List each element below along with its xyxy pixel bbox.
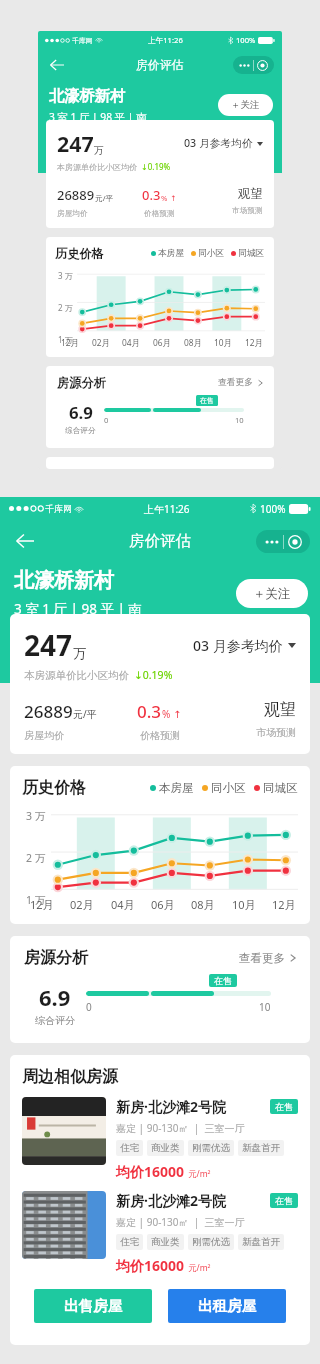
staticText: 26889 xyxy=(24,700,73,723)
staticText: 3 万 xyxy=(26,809,46,823)
staticText: % xyxy=(161,193,168,203)
button[interactable]: 出租房屋 xyxy=(168,1289,286,1323)
staticText: 元/平 xyxy=(95,193,114,203)
staticText: 02月 xyxy=(70,897,94,912)
staticText: 08月 xyxy=(191,897,215,912)
staticText: 观望 xyxy=(264,700,296,720)
staticText: 新盘首开 xyxy=(242,1236,280,1248)
staticText: 同小区 xyxy=(198,248,225,259)
staticText: 均价16000 xyxy=(116,1256,185,1275)
staticText: 元/平 xyxy=(73,707,97,721)
staticText: 北濠桥新村 xyxy=(49,86,126,105)
staticText: 03 月参考均价 xyxy=(184,136,253,151)
staticText: 综合评分 xyxy=(65,426,96,436)
staticText: 房屋均价 xyxy=(24,729,64,742)
button[interactable]: Back xyxy=(9,525,41,557)
staticText: 100% xyxy=(236,35,256,45)
staticText: 住宅 xyxy=(120,1236,139,1248)
staticText: ↓0.19% xyxy=(134,668,173,682)
staticText: 在售 xyxy=(275,1101,293,1112)
staticText: 3 室 1 厅 | 98 平 | 南 xyxy=(14,600,142,618)
staticText: 03 月参考均价 xyxy=(193,636,283,655)
staticText: 1 万 xyxy=(58,334,73,345)
staticText: 元/m² xyxy=(188,1168,211,1180)
staticText: 12月 xyxy=(272,897,296,912)
staticText: 10 xyxy=(259,1000,271,1014)
staticText: 3 室 1 厅 | 98 平 | 南 xyxy=(49,110,147,124)
staticText: 本房屋 xyxy=(159,781,194,795)
staticText: 查看更多 xyxy=(239,951,285,965)
staticText: 千库网 xyxy=(72,36,93,45)
staticText: 刚需优选 xyxy=(192,1236,230,1248)
staticText: ＋关注 xyxy=(253,586,291,602)
staticText: 房价评估 xyxy=(129,531,191,551)
staticText: 10月 xyxy=(232,897,256,912)
staticText: 房源分析 xyxy=(24,948,88,968)
button[interactable]: ＋关注 xyxy=(236,579,308,608)
button[interactable]: 查看更多 xyxy=(218,377,263,388)
staticText: 12月 xyxy=(61,337,79,348)
staticText: 查看更多 xyxy=(218,377,254,388)
staticText: 0.3 xyxy=(142,186,161,204)
staticText: 0.3 xyxy=(137,700,162,723)
button[interactable]: 03 月参考均价 xyxy=(193,636,296,655)
staticText: 6.9 xyxy=(39,982,71,1012)
staticText: 本房源单价比小区均价 xyxy=(57,162,137,172)
staticText: 市场预测 xyxy=(256,726,296,739)
staticText: 元/m² xyxy=(188,1262,211,1274)
staticText: 0 xyxy=(104,415,109,425)
staticText: 06月 xyxy=(151,897,175,912)
staticText: 价格预测 xyxy=(140,729,180,742)
staticText: 万 xyxy=(73,645,86,661)
staticText: 在售 xyxy=(214,975,232,986)
staticText: ↑ xyxy=(173,709,182,721)
staticText: 市场预测 xyxy=(232,206,263,216)
staticText: 6.9 xyxy=(69,401,93,424)
button[interactable]: Back xyxy=(45,53,69,77)
staticText: 刚需优选 xyxy=(192,1142,230,1154)
staticText: 10 xyxy=(235,415,244,425)
staticText: 房源分析 xyxy=(57,375,106,390)
staticText: % xyxy=(162,707,171,721)
staticText: 3 万 xyxy=(58,270,73,281)
staticText: 04月 xyxy=(122,337,140,348)
staticText: 新房·北沙滩2号院 xyxy=(116,1191,226,1210)
staticText: 嘉定 | 90-130㎡ | 三室一厅 xyxy=(116,1121,245,1135)
staticText: 在售 xyxy=(200,396,214,405)
staticText: 千库网 xyxy=(45,503,72,514)
button[interactable]: 出售房屋 xyxy=(34,1289,152,1323)
button[interactable]: 新房·北沙滩2号院 xyxy=(22,1097,298,1181)
staticText: 12月 xyxy=(30,897,54,912)
staticText: 06月 xyxy=(153,337,171,348)
staticText: 均价16000 xyxy=(116,1162,185,1181)
staticText: ↑ xyxy=(170,194,177,203)
staticText: 1 万 xyxy=(26,893,46,907)
staticText: 本房屋 xyxy=(158,248,185,259)
staticText: 出售房屋 xyxy=(64,1297,122,1315)
button[interactable]: 查看更多 xyxy=(239,951,296,965)
staticText: 周边相似房源 xyxy=(22,1067,118,1087)
staticText: 在售 xyxy=(275,1195,293,1206)
button[interactable]: ＋关注 xyxy=(218,94,273,116)
staticText: 2 万 xyxy=(26,851,46,865)
staticText: 嘉定 | 90-130㎡ | 三室一厅 xyxy=(116,1215,245,1229)
staticText: 房屋均价 xyxy=(57,209,88,219)
staticText: 本房源单价比小区均价 xyxy=(24,669,129,682)
staticText: 住宅 xyxy=(120,1142,139,1154)
staticText: ↓0.19% xyxy=(141,161,171,172)
staticText: 历史价格 xyxy=(22,778,86,798)
staticText: 0 xyxy=(86,1000,92,1014)
staticText: 综合评分 xyxy=(35,1014,75,1027)
staticText: 同城区 xyxy=(238,248,265,259)
staticText: 房价评估 xyxy=(136,58,184,73)
staticText: 北濠桥新村 xyxy=(14,568,114,593)
button[interactable]: More options xyxy=(256,530,310,553)
staticText: 上午11:26 xyxy=(148,35,183,45)
staticText: 万 xyxy=(94,144,104,156)
staticText: 商业类 xyxy=(151,1236,180,1248)
button[interactable]: 新房·北沙滩2号院 xyxy=(22,1191,298,1275)
staticText: 247 xyxy=(57,129,94,158)
button[interactable]: 03 月参考均价 xyxy=(184,136,263,151)
staticText: 新房·北沙滩2号院 xyxy=(116,1097,226,1116)
button[interactable]: More options xyxy=(233,56,274,74)
